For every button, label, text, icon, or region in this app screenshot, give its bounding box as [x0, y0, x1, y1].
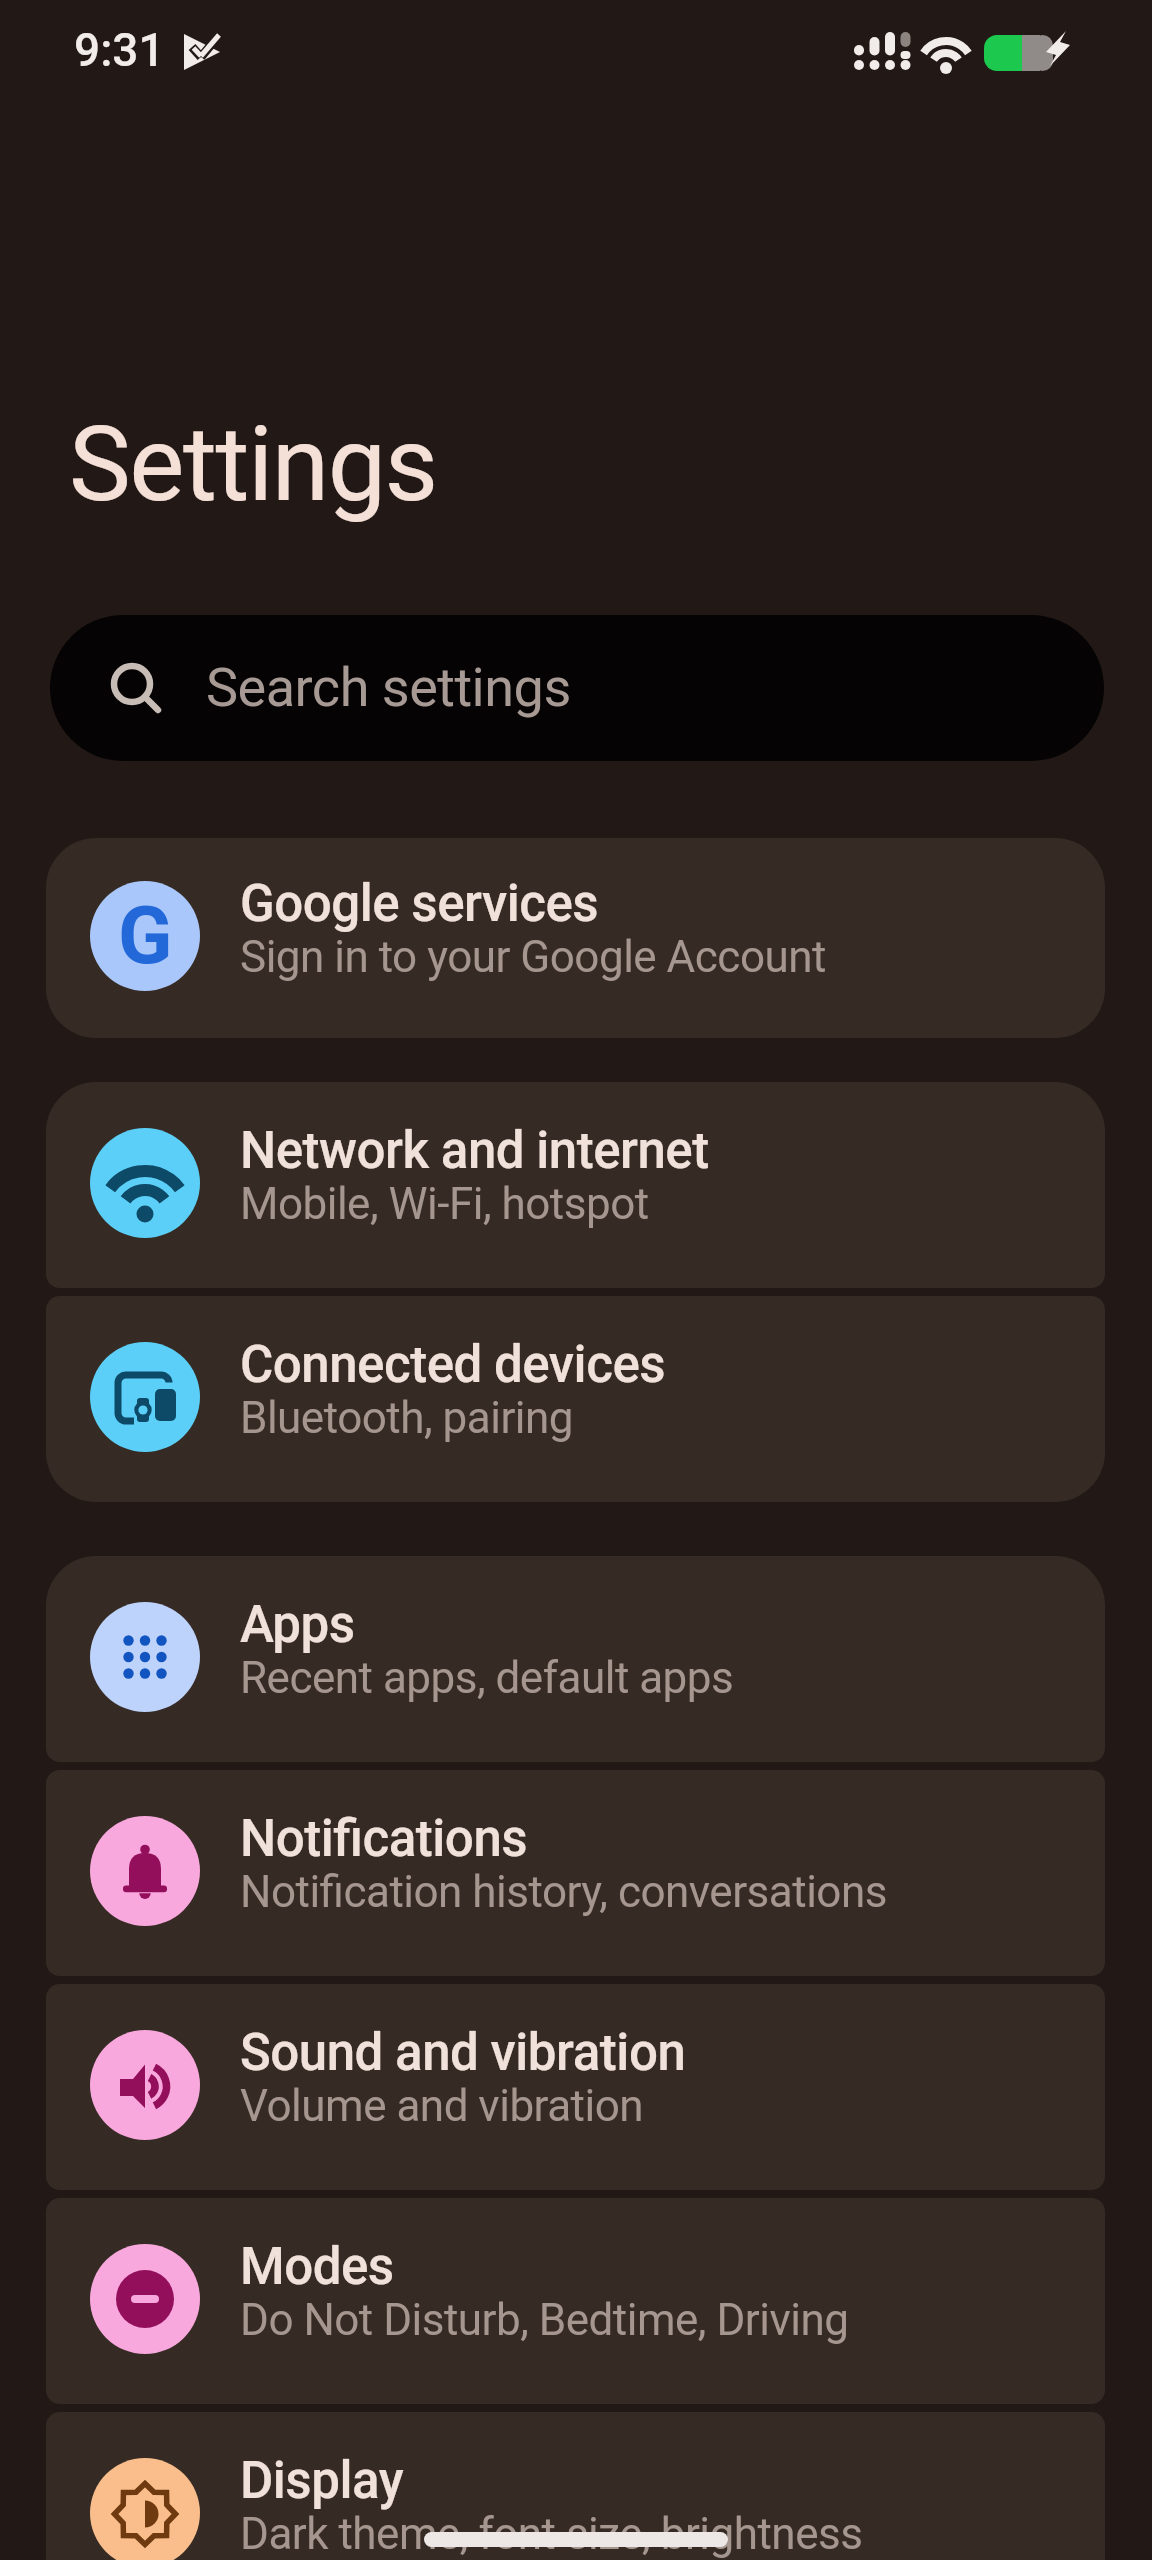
- staticText: Notifications: [240, 1809, 528, 1869]
- button[interactable]: Apps: [46, 1556, 1105, 1762]
- button[interactable]: Network and internet: [46, 1082, 1105, 1288]
- staticText: Apps: [240, 1595, 355, 1655]
- staticText: 9:31: [74, 23, 165, 77]
- button[interactable]: Display: [46, 2412, 1105, 2560]
- button[interactable]: Connected devices: [46, 1296, 1105, 1502]
- staticText: Network and internet: [240, 1121, 709, 1181]
- staticText: Do Not Disturb, Bedtime, Driving: [240, 2294, 849, 2346]
- staticText: Recent apps, default apps: [240, 1652, 734, 1704]
- button[interactable]: Modes: [46, 2198, 1105, 2404]
- staticText: Display: [240, 2451, 404, 2511]
- button[interactable]: Sound and vibration: [46, 1984, 1105, 2190]
- staticText: Modes: [240, 2237, 394, 2297]
- staticText: Connected devices: [240, 1335, 666, 1395]
- staticText: Sign in to your Google Account: [240, 931, 826, 983]
- staticText: G: [118, 889, 173, 983]
- staticText: Notification history, conversations: [240, 1866, 887, 1918]
- staticText: Settings: [69, 404, 437, 526]
- staticText: Bluetooth, pairing: [240, 1392, 574, 1444]
- staticText: Mobile, Wi-Fi, hotspot: [240, 1178, 649, 1230]
- staticText: Dark theme, font size, brightness: [240, 2508, 863, 2560]
- staticText: Search settings: [206, 656, 571, 719]
- staticText: Sound and vibration: [240, 2023, 686, 2083]
- staticText: Volume and vibration: [240, 2080, 644, 2132]
- button[interactable]: G: [46, 838, 1105, 1038]
- button[interactable]: [50, 615, 1104, 761]
- staticText: Google services: [240, 874, 599, 934]
- button[interactable]: Notifications: [46, 1770, 1105, 1976]
